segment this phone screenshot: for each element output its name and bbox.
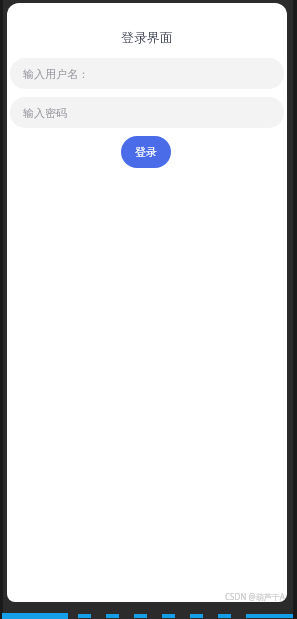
staticText: 登录 [135,145,157,159]
button[interactable]: 输入密码 [10,97,284,128]
staticText: 输入用户名： [23,67,89,81]
button[interactable]: 输入用户名： [10,58,284,89]
staticText: CSDN @葫芦干A [225,591,285,602]
staticText: 输入密码 [23,106,67,120]
staticText: 登录界面 [7,29,287,45]
button[interactable]: 登录 [121,136,171,168]
